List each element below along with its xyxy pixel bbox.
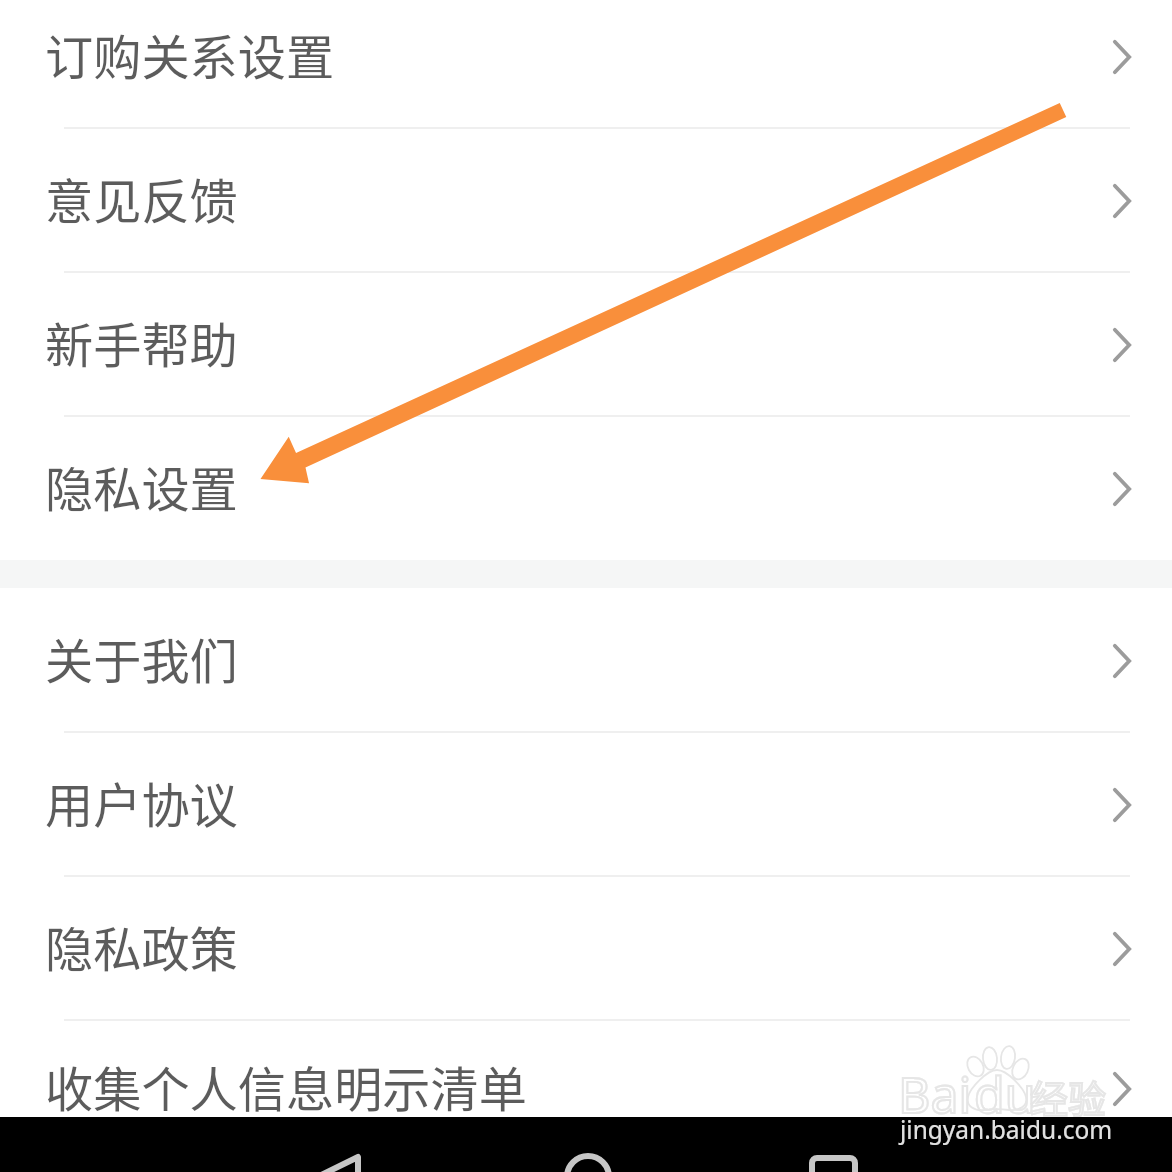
staticText: 隐私政策 xyxy=(45,911,238,981)
staticText: Bai xyxy=(898,1060,972,1128)
staticText: 意见反馈 xyxy=(45,163,238,233)
staticText: 经验 xyxy=(1030,1069,1107,1124)
staticText: 收集个人信息明示清单 xyxy=(45,1051,527,1121)
button[interactable]: 隐私政策 xyxy=(0,877,1172,1021)
button[interactable]: 订购关系设置 xyxy=(0,0,1172,129)
staticText: 订购关系设置 xyxy=(45,19,335,89)
button[interactable]: 关于我们 xyxy=(0,588,1172,733)
button[interactable]: Back xyxy=(244,1117,419,1172)
button[interactable]: 新手帮助 xyxy=(0,273,1172,417)
staticText: du xyxy=(974,1060,1036,1128)
button[interactable]: 用户协议 xyxy=(0,733,1172,877)
staticText: 隐私设置 xyxy=(45,451,238,521)
staticText: 关于我们 xyxy=(45,623,238,693)
button[interactable]: Recents xyxy=(746,1117,921,1172)
staticText: 新手帮助 xyxy=(45,307,238,377)
button[interactable]: 意见反馈 xyxy=(0,129,1172,273)
staticText: jingyan.baidu.com xyxy=(900,1113,1113,1146)
button[interactable]: Home xyxy=(500,1117,675,1172)
staticText: 用户协议 xyxy=(45,767,238,837)
button[interactable]: 收集个人信息明示清单 xyxy=(0,1021,1172,1157)
button[interactable]: 隐私设置 xyxy=(0,417,1172,560)
